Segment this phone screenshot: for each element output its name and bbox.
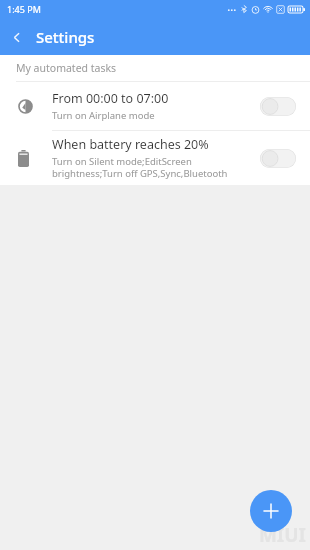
staticText: Turn on Airplane mode — [52, 109, 155, 122]
staticText: From 00:00 to 07:00 — [52, 90, 169, 107]
staticText: My automated tasks — [16, 61, 117, 75]
button[interactable]: Toggle task — [260, 97, 296, 116]
staticText: When battery reaches 20% — [52, 136, 209, 153]
staticText: MIUI — [258, 522, 306, 548]
button[interactable]: Add task — [250, 490, 292, 532]
staticText: Turn on Silent mode;EditScreen brightnes… — [52, 155, 252, 180]
staticText: Settings — [36, 27, 95, 47]
button[interactable]: When battery reaches 20% — [0, 131, 310, 185]
button[interactable]: Back — [0, 20, 34, 54]
staticText: 1:45 PM — [7, 3, 41, 15]
button[interactable]: From 00:00 to 07:00 — [0, 82, 310, 130]
button[interactable]: Toggle task — [260, 149, 296, 168]
